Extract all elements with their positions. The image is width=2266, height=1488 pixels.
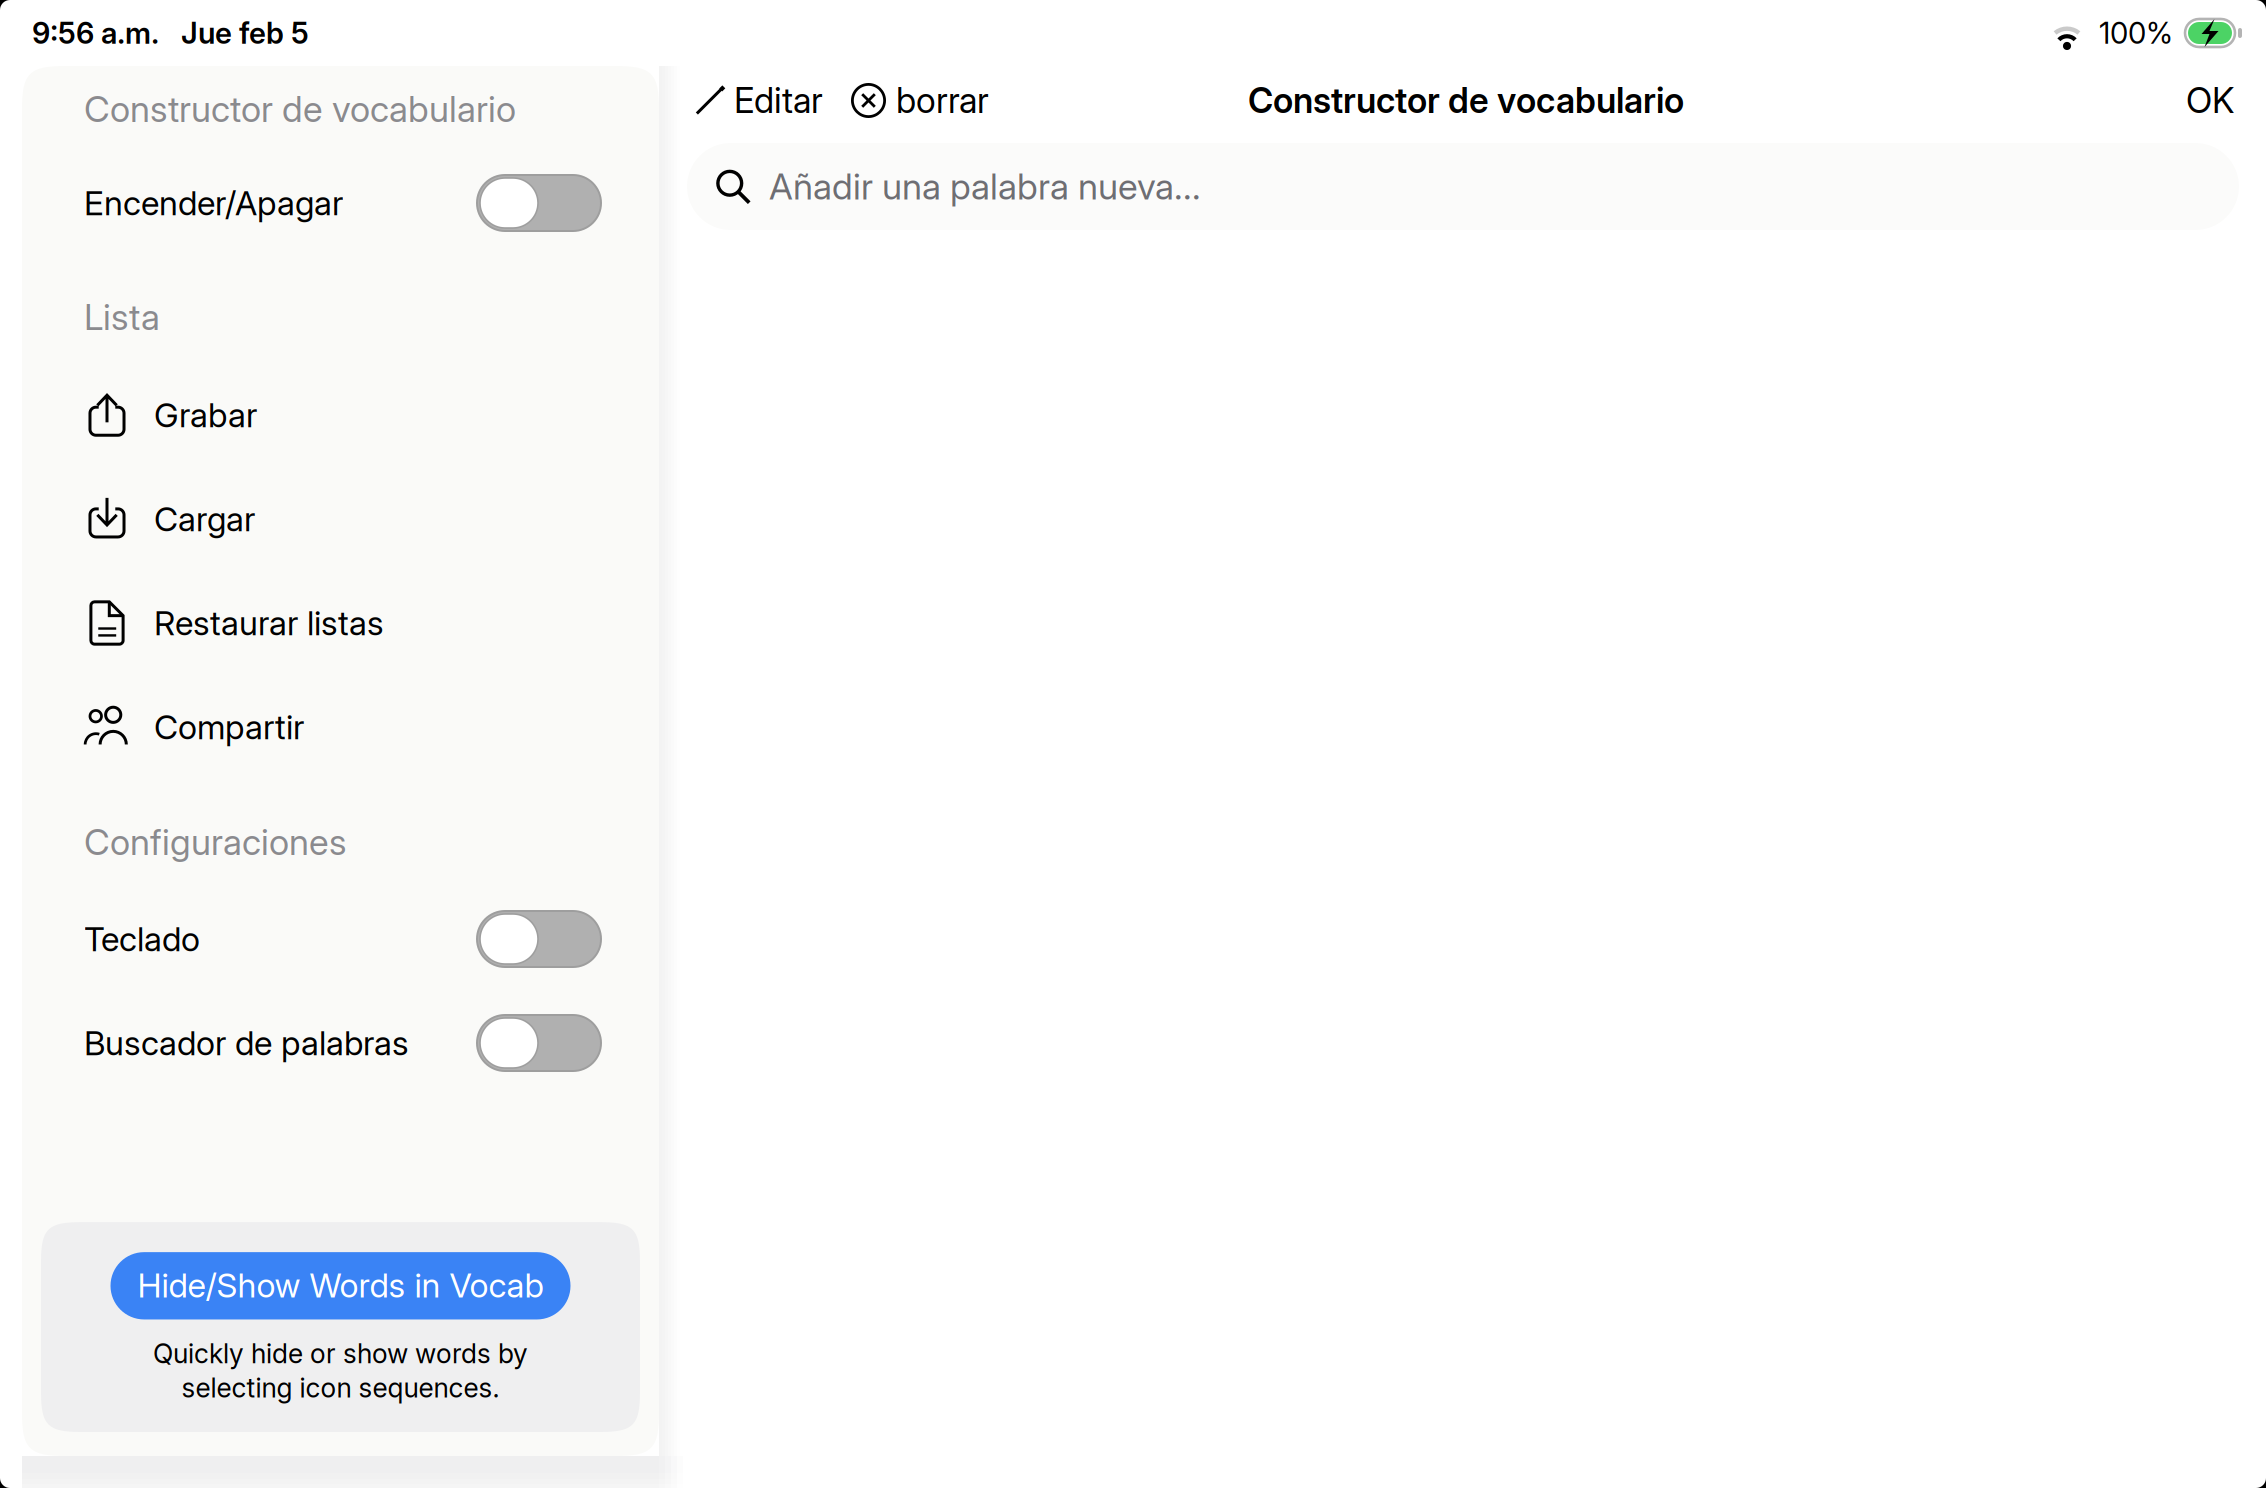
staticText: 9:56 a.m. [32,15,159,51]
staticText: OK [2186,79,2234,121]
staticText: Añadir una palabra nueva... [769,165,1201,208]
button[interactable]: OK [2170,69,2247,131]
button[interactable]: Editar [685,69,833,131]
staticText: Teclado [84,919,200,959]
staticText: Constructor de vocabulario [84,87,516,131]
staticText: borrar [896,79,989,121]
staticText: Quickly hide or show words by [153,1337,528,1370]
staticText: Encender/Apagar [84,183,343,223]
button[interactable]: Restaurar listas [22,571,659,675]
staticText: Hide/Show Words in Vocab [137,1265,543,1305]
staticText: Jue feb 5 [181,15,309,51]
staticText: Editar [734,79,823,121]
staticText: Restaurar listas [154,603,384,643]
staticText: Configuraciones [84,820,346,864]
button[interactable]: Grabar [22,363,659,467]
button[interactable]: Compartir [22,675,659,779]
staticText: Lista [84,295,160,339]
button[interactable]: Hide/Show Words in Vocab [110,1252,570,1319]
staticText: Compartir [154,707,304,747]
button[interactable]: Toggle [477,175,601,231]
button[interactable]: Cargar [22,467,659,571]
staticText: Cargar [154,499,255,539]
staticText: Buscador de palabras [84,1023,409,1063]
button[interactable]: Toggle [477,1015,601,1071]
button[interactable]: Toggle [477,911,601,967]
button[interactable]: Añadir una palabra nueva... [687,143,2239,230]
staticText: Grabar [154,395,257,435]
staticText: selecting icon sequences. [181,1372,499,1404]
button[interactable]: borrar [833,69,999,131]
staticText: 100% [2099,15,2173,51]
staticText: Constructor de vocabulario [1248,79,1684,121]
